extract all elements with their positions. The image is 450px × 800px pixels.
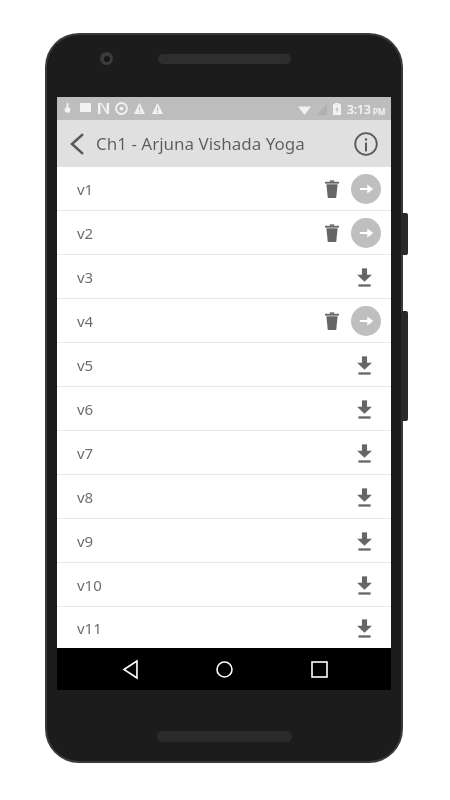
staticText: v6: [77, 399, 94, 419]
button[interactable]: Download: [347, 611, 381, 645]
staticText: v7: [77, 443, 94, 463]
button[interactable]: Download: [347, 568, 381, 602]
button[interactable]: Play: [351, 306, 381, 336]
button[interactable]: Play: [351, 218, 381, 248]
button[interactable]: v9: [57, 519, 391, 562]
button[interactable]: v8: [57, 475, 391, 518]
staticText: PM: [373, 106, 386, 117]
button[interactable]: Download: [347, 480, 381, 514]
button[interactable]: v5: [57, 343, 391, 386]
button[interactable]: Delete: [315, 172, 349, 206]
button[interactable]: Download: [347, 436, 381, 470]
button[interactable]: v2: [57, 211, 391, 254]
button[interactable]: Download: [347, 260, 381, 294]
button[interactable]: v10: [57, 563, 391, 606]
button[interactable]: v11: [57, 607, 391, 648]
staticText: v10: [77, 575, 102, 595]
staticText: v11: [77, 618, 102, 638]
button[interactable]: Recents: [297, 648, 341, 690]
button[interactable]: Play: [351, 174, 381, 204]
staticText: 3:13: [347, 101, 371, 117]
button[interactable]: Info: [347, 125, 385, 163]
staticText: v9: [77, 531, 94, 551]
button[interactable]: Download: [347, 524, 381, 558]
button[interactable]: Delete: [315, 304, 349, 338]
button[interactable]: v3: [57, 255, 391, 298]
button[interactable]: Back: [108, 648, 152, 690]
button[interactable]: Download: [347, 348, 381, 382]
staticText: v3: [77, 267, 94, 287]
button[interactable]: v4: [57, 299, 391, 342]
staticText: v5: [77, 355, 94, 375]
button[interactable]: v1: [57, 167, 391, 210]
staticText: v1: [77, 179, 94, 199]
staticText: Ch1 - Arjuna Vishada Yoga: [96, 132, 305, 155]
button[interactable]: v6: [57, 387, 391, 430]
button[interactable]: Delete: [315, 216, 349, 250]
button[interactable]: Back: [57, 124, 97, 164]
staticText: v8: [77, 487, 94, 507]
staticText: v2: [77, 223, 94, 243]
staticText: v4: [77, 311, 94, 331]
button[interactable]: v7: [57, 431, 391, 474]
button[interactable]: Download: [347, 392, 381, 426]
button[interactable]: Home: [202, 648, 246, 690]
